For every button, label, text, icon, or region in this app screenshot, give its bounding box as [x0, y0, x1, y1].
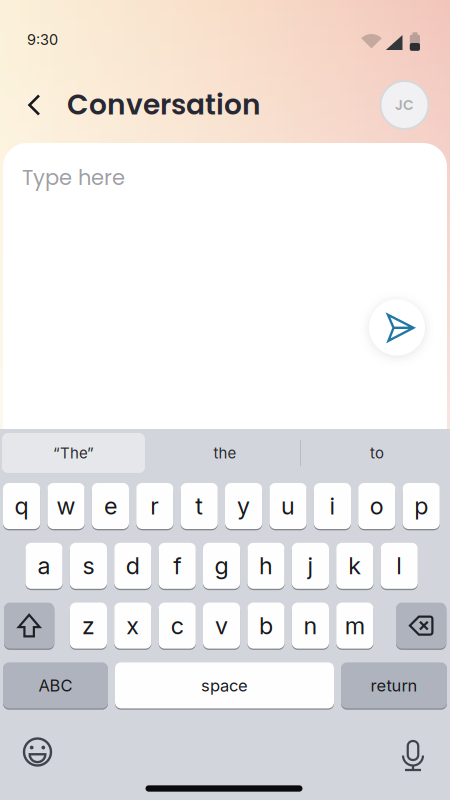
staticText: s [82, 552, 94, 580]
button[interactable]: return [341, 662, 447, 708]
staticText: d [126, 552, 140, 580]
staticText: o [370, 492, 384, 520]
button[interactable]: s [70, 543, 107, 589]
button[interactable]: p [403, 483, 440, 529]
button[interactable]: d [114, 543, 151, 589]
staticText: space [201, 675, 248, 695]
button[interactable]: z [70, 603, 107, 649]
staticText: f [173, 552, 181, 580]
staticText: “The” [53, 444, 94, 462]
staticText: JC [395, 95, 414, 115]
button[interactable]: “The” [2, 433, 145, 473]
button[interactable]: w [47, 483, 85, 529]
staticText: w [56, 492, 75, 520]
staticText: e [104, 492, 117, 520]
button[interactable]: JC [380, 81, 428, 129]
staticText: y [237, 492, 250, 520]
button[interactable]: g [203, 543, 240, 589]
staticText: l [396, 552, 402, 580]
staticText: Conversation [67, 85, 261, 124]
button[interactable]: to [307, 433, 447, 473]
button[interactable]: y [225, 483, 262, 529]
staticText: v [215, 611, 228, 640]
staticText: t [195, 492, 203, 520]
staticText: n [303, 611, 317, 640]
button[interactable]: e [92, 483, 129, 529]
staticText: m [345, 611, 365, 640]
staticText: Type here [22, 163, 125, 192]
staticText: k [348, 552, 361, 580]
staticText: 9:30 [27, 31, 58, 48]
button[interactable] [17, 83, 51, 126]
button[interactable] [396, 603, 446, 649]
button[interactable]: l [381, 543, 418, 589]
staticText: r [150, 492, 159, 520]
staticText: b [259, 611, 273, 640]
button[interactable]: ABC [3, 662, 108, 708]
staticText: p [414, 492, 428, 520]
button[interactable]: b [247, 603, 285, 649]
button[interactable]: r [136, 483, 173, 529]
button[interactable]: i [314, 483, 351, 529]
staticText: to [370, 444, 384, 462]
staticText: j [307, 552, 313, 580]
staticText: return [370, 675, 417, 695]
button[interactable] [4, 603, 54, 649]
staticText: a [37, 552, 50, 580]
staticText: ABC [38, 675, 72, 695]
staticText: z [82, 611, 95, 640]
button[interactable]: m [336, 603, 373, 649]
button[interactable]: x [114, 603, 151, 649]
button[interactable]: n [292, 603, 329, 649]
staticText: u [281, 492, 295, 520]
button[interactable] [394, 733, 432, 779]
staticText: i [329, 492, 335, 520]
staticText: g [215, 552, 229, 580]
button[interactable]: v [203, 603, 240, 649]
button[interactable]: o [358, 483, 395, 529]
staticText: c [171, 611, 184, 640]
button[interactable]: j [292, 543, 329, 589]
staticText: q [15, 492, 29, 520]
button[interactable]: a [25, 543, 63, 589]
button[interactable]: u [269, 483, 307, 529]
button[interactable]: f [159, 543, 196, 589]
staticText: h [259, 552, 273, 580]
button[interactable]: h [247, 543, 285, 589]
staticText: x [126, 611, 139, 640]
button[interactable]: space [115, 662, 334, 708]
button[interactable]: c [159, 603, 196, 649]
button[interactable]: q [3, 483, 40, 529]
button[interactable] [369, 299, 425, 355]
staticText: the [213, 444, 236, 462]
button[interactable] [16, 730, 59, 773]
button[interactable]: k [336, 543, 373, 589]
button[interactable]: t [181, 483, 218, 529]
button[interactable]: the [155, 433, 295, 473]
